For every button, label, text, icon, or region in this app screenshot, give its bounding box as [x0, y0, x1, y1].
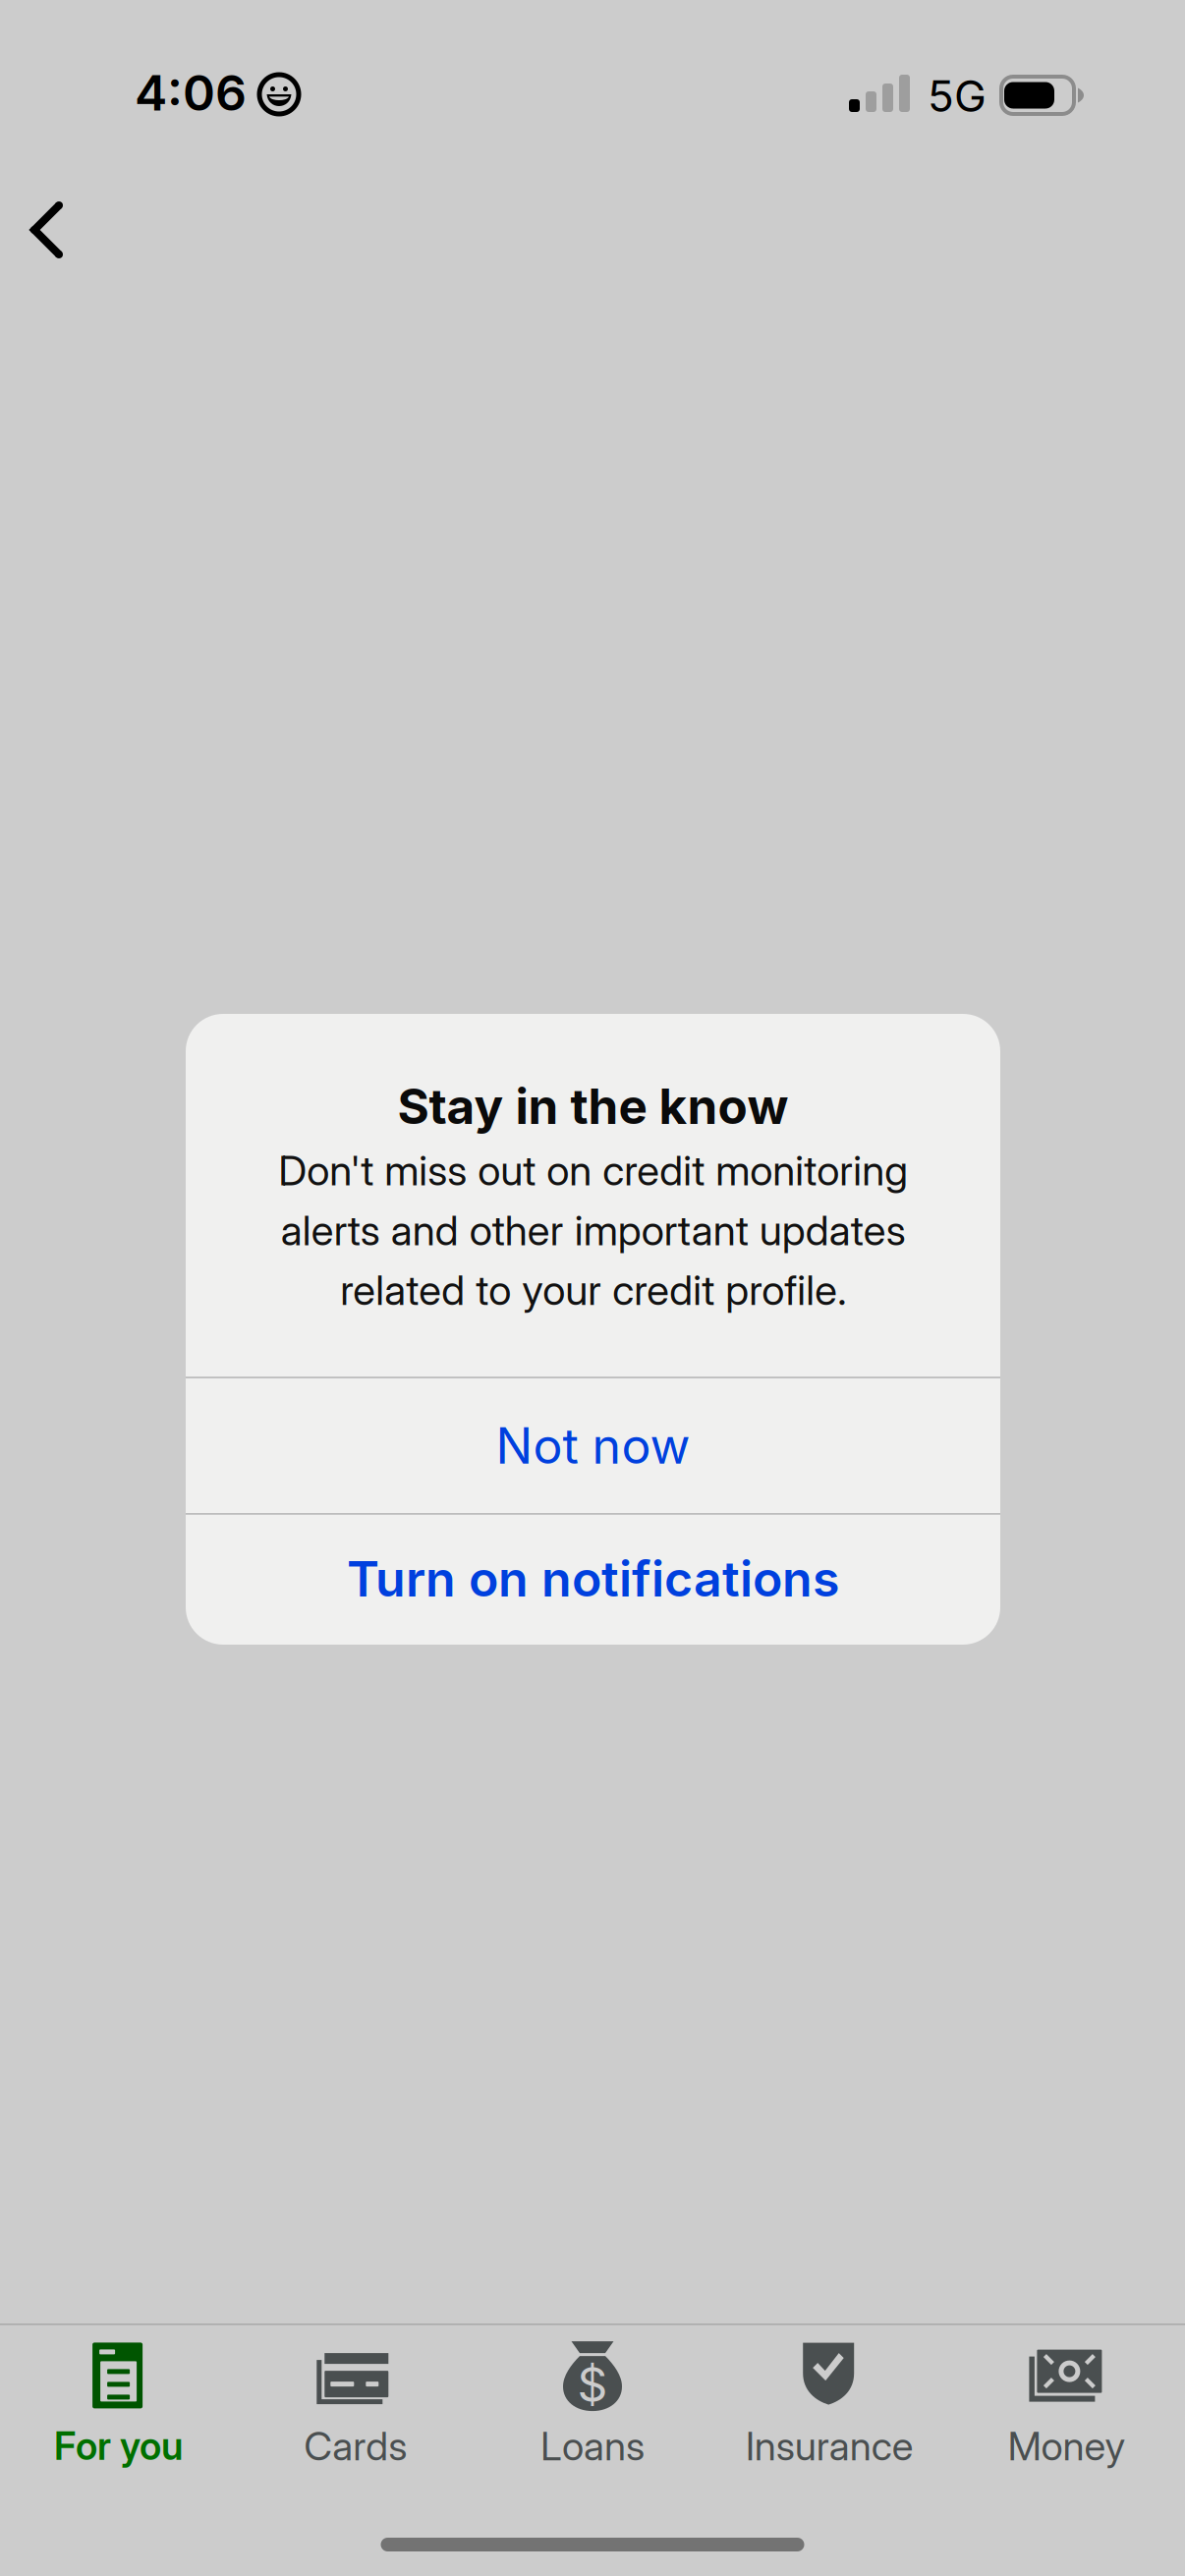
staticText: Money: [1008, 2422, 1125, 2470]
button[interactable]: Back: [2, 174, 91, 286]
staticText: Insurance: [745, 2422, 914, 2470]
button[interactable]: Insurance: [711, 2325, 948, 2484]
staticText: Don't miss out on credit monitoring aler…: [278, 1145, 908, 1315]
staticText: 5G: [928, 70, 987, 122]
staticText: Turn on notifications: [347, 1549, 839, 1608]
button[interactable]: For you: [0, 2326, 237, 2483]
button[interactable]: $: [474, 2325, 711, 2484]
staticText: Stay in the know: [397, 1077, 789, 1136]
button[interactable]: Turn on notifications: [186, 1515, 1000, 1644]
staticText: 4:06: [135, 63, 247, 122]
staticText: For you: [54, 2423, 183, 2469]
button[interactable]: Not now: [186, 1378, 1000, 1513]
button[interactable]: Cards: [237, 2325, 474, 2484]
staticText: Loans: [540, 2422, 645, 2470]
staticText: Cards: [304, 2422, 407, 2470]
button[interactable]: Money: [948, 2325, 1185, 2484]
staticText: Not now: [496, 1416, 690, 1475]
staticText: $: [577, 2356, 608, 2413]
